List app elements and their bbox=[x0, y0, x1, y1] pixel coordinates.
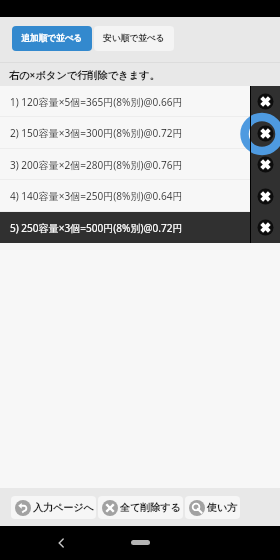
staticText: 4) 140容量×3個=250円(8%別)@0.64円 bbox=[10, 189, 183, 203]
staticText: 2) 150容量×3個=300円(8%別)@0.72円 bbox=[10, 126, 183, 140]
staticText: 安い順で並べる bbox=[103, 33, 165, 44]
staticText: 1) 120容量×5個=365円(8%別)@0.66円 bbox=[10, 95, 183, 109]
button[interactable]: 使い方 bbox=[185, 496, 240, 519]
button[interactable]: 4) 140容量×3個=250円(8%別)@0.64円 bbox=[0, 180, 250, 212]
staticText: 入力ページへ bbox=[33, 501, 94, 514]
staticText: 右の×ボタンで行削除できます。 bbox=[9, 68, 160, 82]
button[interactable]: 入力ページへ bbox=[11, 496, 96, 519]
button[interactable]: 2) 150容量×3個=300円(8%別)@0.72円 bbox=[0, 117, 250, 149]
button[interactable]: Delete row bbox=[251, 86, 280, 117]
staticText: 使い方 bbox=[207, 501, 238, 514]
button[interactable]: Delete row bbox=[251, 149, 280, 180]
staticText: 3) 200容量×2個=280円(8%別)@0.76円 bbox=[10, 158, 183, 172]
staticText: 追加順で並べる bbox=[21, 33, 83, 44]
button[interactable]: Home bbox=[131, 540, 150, 545]
button[interactable]: Back bbox=[54, 536, 68, 550]
button[interactable]: 1) 120容量×5個=365円(8%別)@0.66円 bbox=[0, 86, 250, 117]
button[interactable]: 3) 200容量×2個=280円(8%別)@0.76円 bbox=[0, 149, 250, 180]
button[interactable]: Delete row bbox=[251, 180, 280, 212]
staticText: 全て削除する bbox=[120, 501, 181, 514]
staticText: 5) 250容量×3個=500円(8%別)@0.72円 bbox=[10, 221, 183, 235]
button[interactable]: 追加順で並べる bbox=[12, 26, 92, 51]
button[interactable]: Delete row bbox=[251, 117, 280, 149]
button[interactable]: 安い順で並べる bbox=[94, 26, 174, 51]
button[interactable]: 全て削除する bbox=[98, 496, 183, 519]
button[interactable]: Delete row bbox=[251, 212, 280, 243]
button[interactable]: 5) 250容量×3個=500円(8%別)@0.72円 bbox=[0, 212, 250, 243]
